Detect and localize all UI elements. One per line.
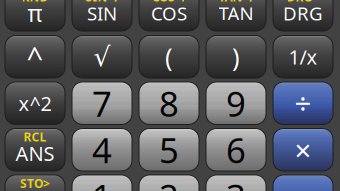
button[interactable]: RND xyxy=(5,0,65,31)
staticText: ÷ xyxy=(294,84,311,123)
staticText: 8 xyxy=(159,80,179,126)
button[interactable]: 8 xyxy=(139,82,199,124)
button[interactable]: 5 xyxy=(139,128,199,171)
button[interactable]: 9 xyxy=(206,82,266,124)
button[interactable]: √ xyxy=(72,35,132,78)
button[interactable]: SIN-1 xyxy=(72,0,132,31)
button[interactable]: 1/x xyxy=(273,35,333,78)
staticText: √ xyxy=(93,42,110,72)
staticText: 6 xyxy=(226,127,246,173)
staticText: COS-1 xyxy=(152,0,186,5)
button[interactable]: STO> xyxy=(5,175,65,191)
staticText: SIN xyxy=(87,1,117,26)
staticText: ^ xyxy=(26,37,43,76)
staticText: 1/x xyxy=(288,43,317,70)
staticText: ) xyxy=(232,40,240,73)
staticText: RND xyxy=(21,0,48,5)
staticText: × xyxy=(294,130,311,169)
button[interactable]: TAN-1 xyxy=(206,0,266,31)
button[interactable]: 7 xyxy=(72,82,132,124)
button[interactable]: − xyxy=(273,175,333,191)
button[interactable]: ) xyxy=(206,35,266,78)
staticText: DRG xyxy=(283,1,323,26)
button[interactable]: 2 xyxy=(139,175,199,191)
button[interactable]: 3 xyxy=(206,175,266,191)
staticText: π xyxy=(27,0,42,28)
staticText: COS xyxy=(151,1,187,26)
staticText: 9 xyxy=(226,80,246,126)
staticText: DRG> xyxy=(286,0,319,5)
button[interactable]: DRG> xyxy=(273,0,333,31)
staticText: ANS xyxy=(15,140,54,167)
staticText: 5 xyxy=(159,127,179,173)
staticText: − xyxy=(294,177,311,191)
button[interactable]: RCL xyxy=(5,128,65,171)
button[interactable]: 4 xyxy=(72,128,132,171)
staticText: RCL xyxy=(23,129,46,145)
button[interactable]: COS-1 xyxy=(139,0,199,31)
staticText: 2 xyxy=(159,173,179,191)
button[interactable]: × xyxy=(273,128,333,171)
button[interactable]: 1 xyxy=(72,175,132,191)
staticText: TAN-1 xyxy=(218,0,253,5)
staticText: ( xyxy=(165,40,173,73)
staticText: 7 xyxy=(92,80,112,126)
staticText: 4 xyxy=(92,127,112,173)
button[interactable]: ( xyxy=(139,35,199,78)
staticText: SIN-1 xyxy=(85,0,118,5)
button[interactable]: ^ xyxy=(5,35,65,78)
staticText: STO> xyxy=(20,175,50,191)
staticText: TAN xyxy=(218,1,253,26)
staticText: 1 xyxy=(92,173,112,191)
button[interactable]: ÷ xyxy=(273,82,333,124)
staticText: 3 xyxy=(226,173,246,191)
staticText: x^2 xyxy=(18,90,51,117)
button[interactable]: x^2 xyxy=(5,82,65,124)
button[interactable]: 6 xyxy=(206,128,266,171)
